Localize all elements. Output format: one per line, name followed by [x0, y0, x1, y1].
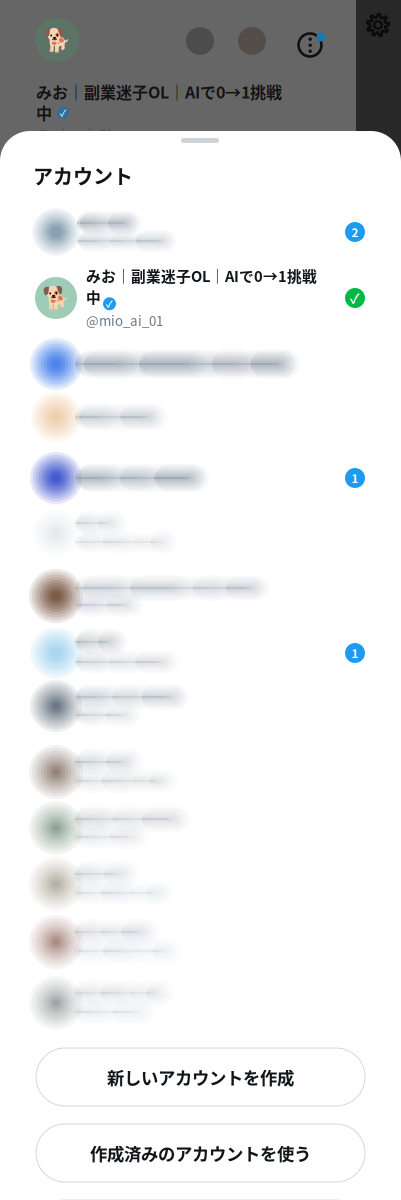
button[interactable]: 🐕: [0, 131, 401, 1200]
staticText: 作成済みのアカウントを使う: [90, 1140, 311, 1166]
staticText: 🐕: [43, 27, 71, 53]
staticText: アカウント: [33, 161, 133, 190]
staticText: ✓: [106, 297, 113, 310]
button[interactable]: 新しいアカウントを作成: [36, 1048, 365, 1106]
staticText: 中: [36, 101, 52, 124]
staticText: 新しいアカウントを作成: [107, 1064, 294, 1090]
staticText: みお｜副業迷子OL｜AIで0→1挑戦: [36, 80, 282, 103]
staticText: 🐕: [42, 285, 70, 311]
staticText: @mio_ai_01: [36, 124, 113, 143]
staticText: 1: [351, 469, 358, 487]
button[interactable]: 作成済みのアカウントを使う: [36, 1124, 365, 1182]
staticText: @mio_ai_01: [86, 310, 163, 330]
button[interactable]: Settings: [365, 12, 391, 38]
staticText: ✓: [59, 106, 66, 119]
button[interactable]: More: [296, 30, 324, 58]
staticText: 2: [351, 223, 358, 241]
staticText: ✓: [350, 288, 360, 308]
staticText: 1: [351, 644, 358, 662]
staticText: みお｜副業迷子OL｜AIで0→1挑戦中: [86, 265, 317, 307]
